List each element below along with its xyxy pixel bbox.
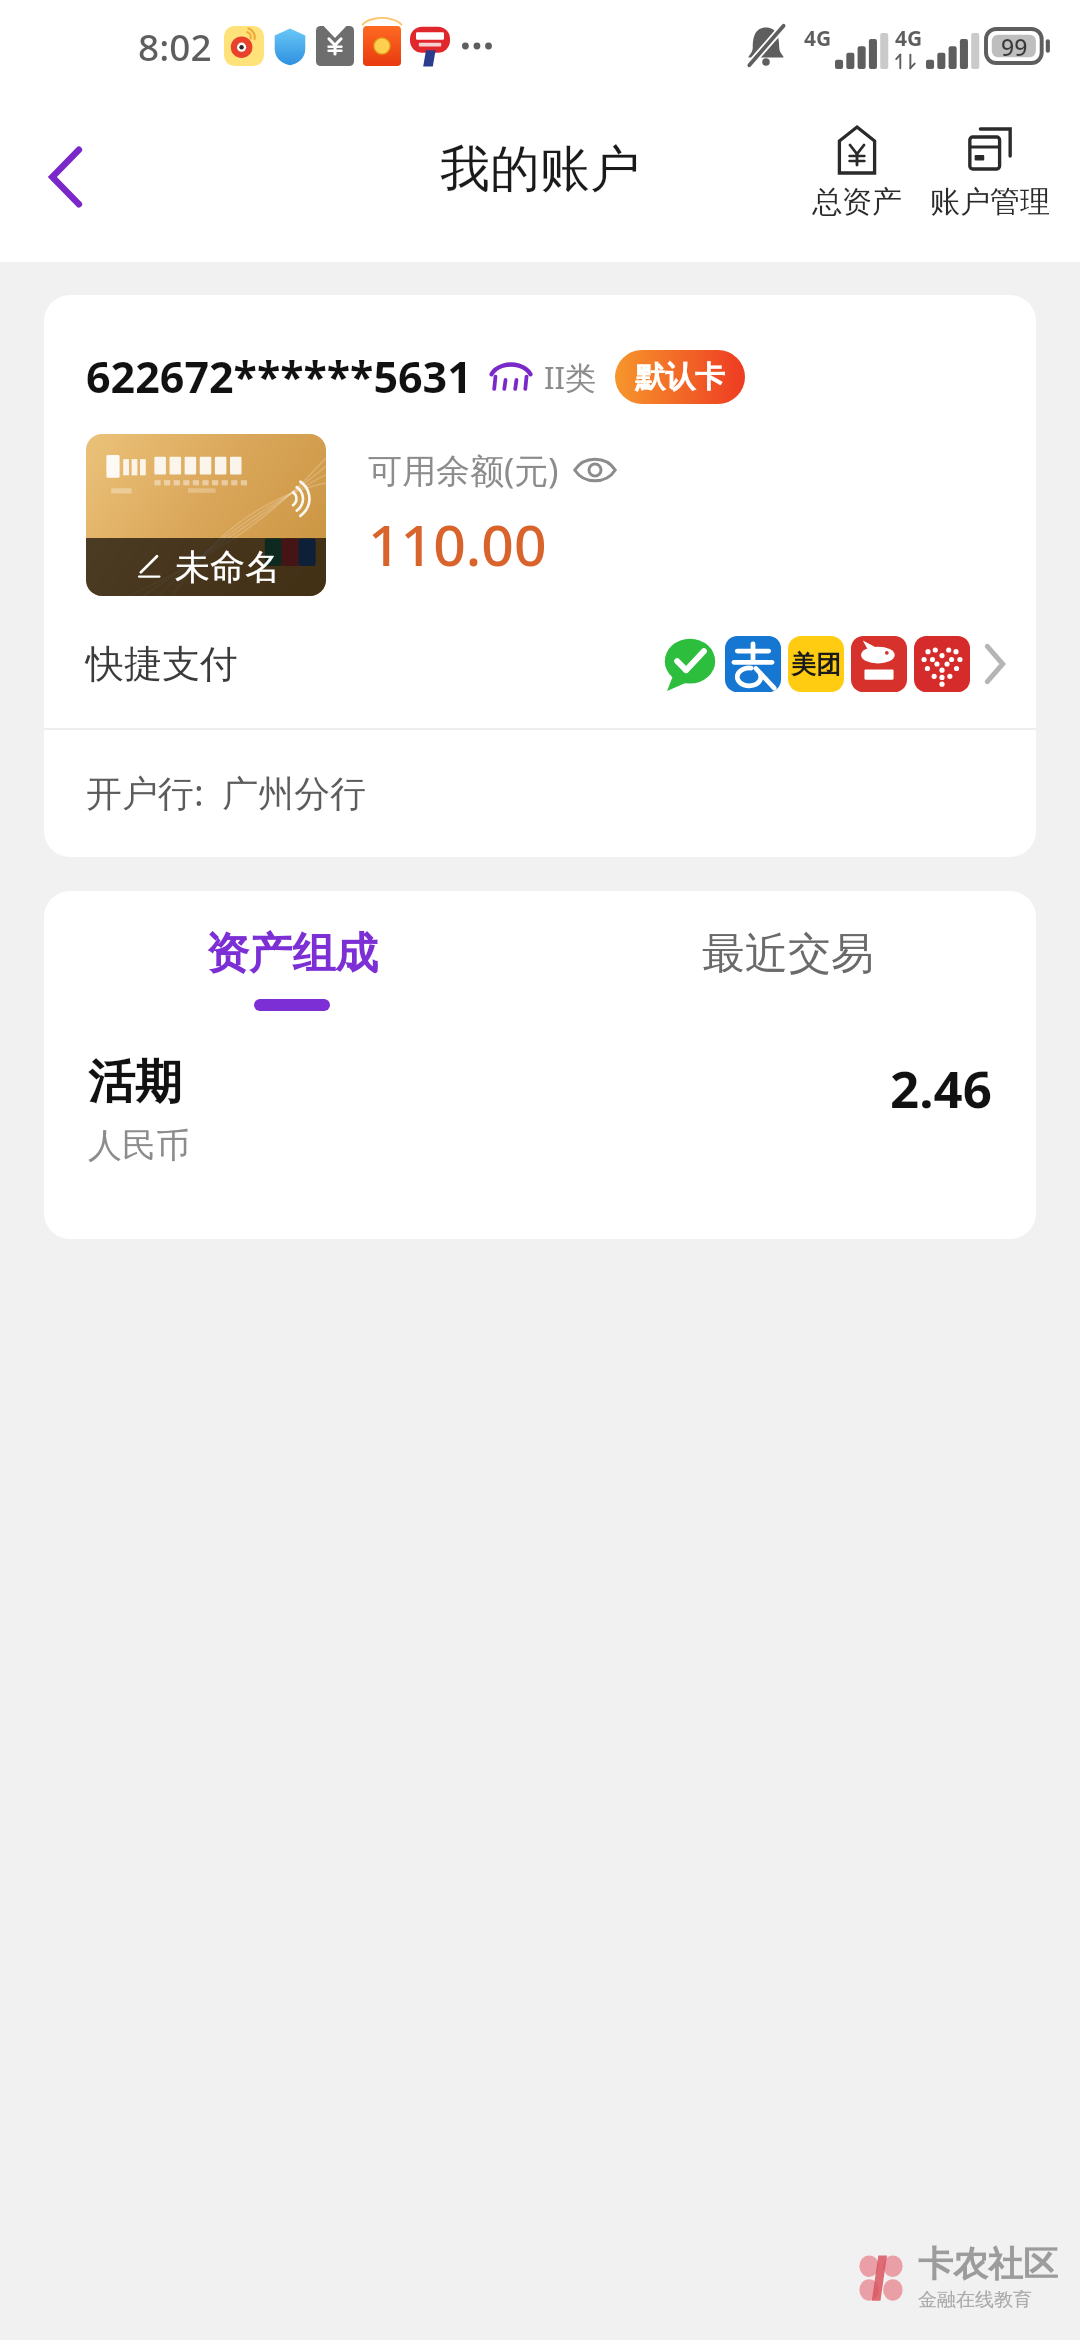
staticText: 8:02 [138, 21, 212, 71]
button[interactable]: 总资产 [806, 121, 908, 225]
button[interactable]: 最近交易 [540, 927, 1036, 1011]
staticText: 资产组成 [206, 927, 378, 981]
button[interactable]: 账户管理 [924, 121, 1056, 225]
staticText: 快捷支付 [86, 640, 238, 688]
button[interactable]: 开户行: 广州分行 [44, 730, 1036, 857]
staticText: 622672******5631 [86, 347, 472, 406]
staticText: 2.46 [890, 1053, 992, 1122]
button[interactable]: 快捷支付 [44, 596, 1036, 728]
staticText: 4G [804, 24, 832, 53]
staticText: 总资产 [812, 183, 902, 221]
staticText: 我的账户 [440, 138, 640, 201]
button[interactable]: 隐藏卡号 [488, 360, 534, 394]
button[interactable]: 未命名 [86, 434, 326, 596]
staticText: 可用余额(元) [368, 447, 559, 493]
staticText: 110.00 [368, 505, 547, 583]
staticText: 金融在线教育 [918, 2288, 1032, 2312]
staticText: 活期 [88, 1053, 182, 1112]
staticText: II类 [544, 356, 597, 398]
button[interactable]: 默认卡 [615, 350, 745, 404]
staticText: 账户管理 [930, 183, 1050, 221]
button[interactable]: 资产组成 [44, 927, 540, 1011]
staticText: 最近交易 [702, 927, 874, 981]
button[interactable]: 显示余额 [573, 455, 617, 485]
staticText: 开户行: 广州分行 [86, 768, 367, 817]
staticText: 卡农社区 [918, 2242, 1058, 2286]
staticText: 4G [895, 24, 923, 53]
staticText: 人民币 [88, 1124, 190, 1167]
staticText: 默认卡 [635, 358, 725, 396]
staticText: 未命名 [175, 545, 280, 589]
button[interactable]: 活期 [44, 1053, 1036, 1167]
staticText: 美团 [791, 649, 841, 680]
button[interactable]: 返回 [20, 131, 112, 223]
staticText: 99 [1001, 31, 1028, 62]
